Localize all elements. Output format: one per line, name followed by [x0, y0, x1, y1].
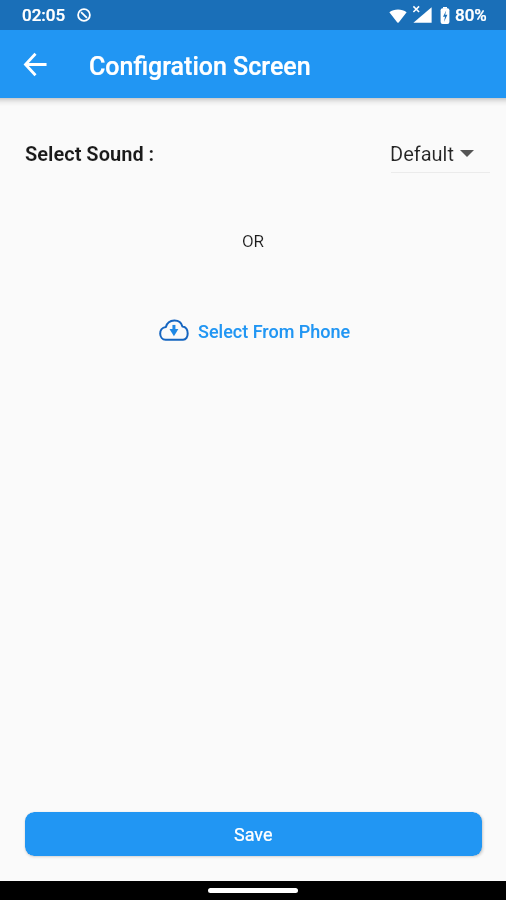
staticText: Select From Phone [198, 321, 351, 342]
button[interactable]: Save [25, 812, 482, 856]
staticText: Configration Screen [89, 52, 311, 81]
staticText: Select Sound : [25, 142, 155, 165]
staticText: OR [0, 231, 506, 251]
staticText: 02:05 [22, 5, 66, 25]
button[interactable]: Default [391, 130, 490, 176]
button[interactable]: Select From Phone [151, 311, 357, 347]
staticText: Default [390, 142, 454, 165]
staticText: Save [234, 824, 273, 845]
staticText: 80% [455, 5, 487, 25]
button[interactable]: Back [14, 43, 56, 85]
